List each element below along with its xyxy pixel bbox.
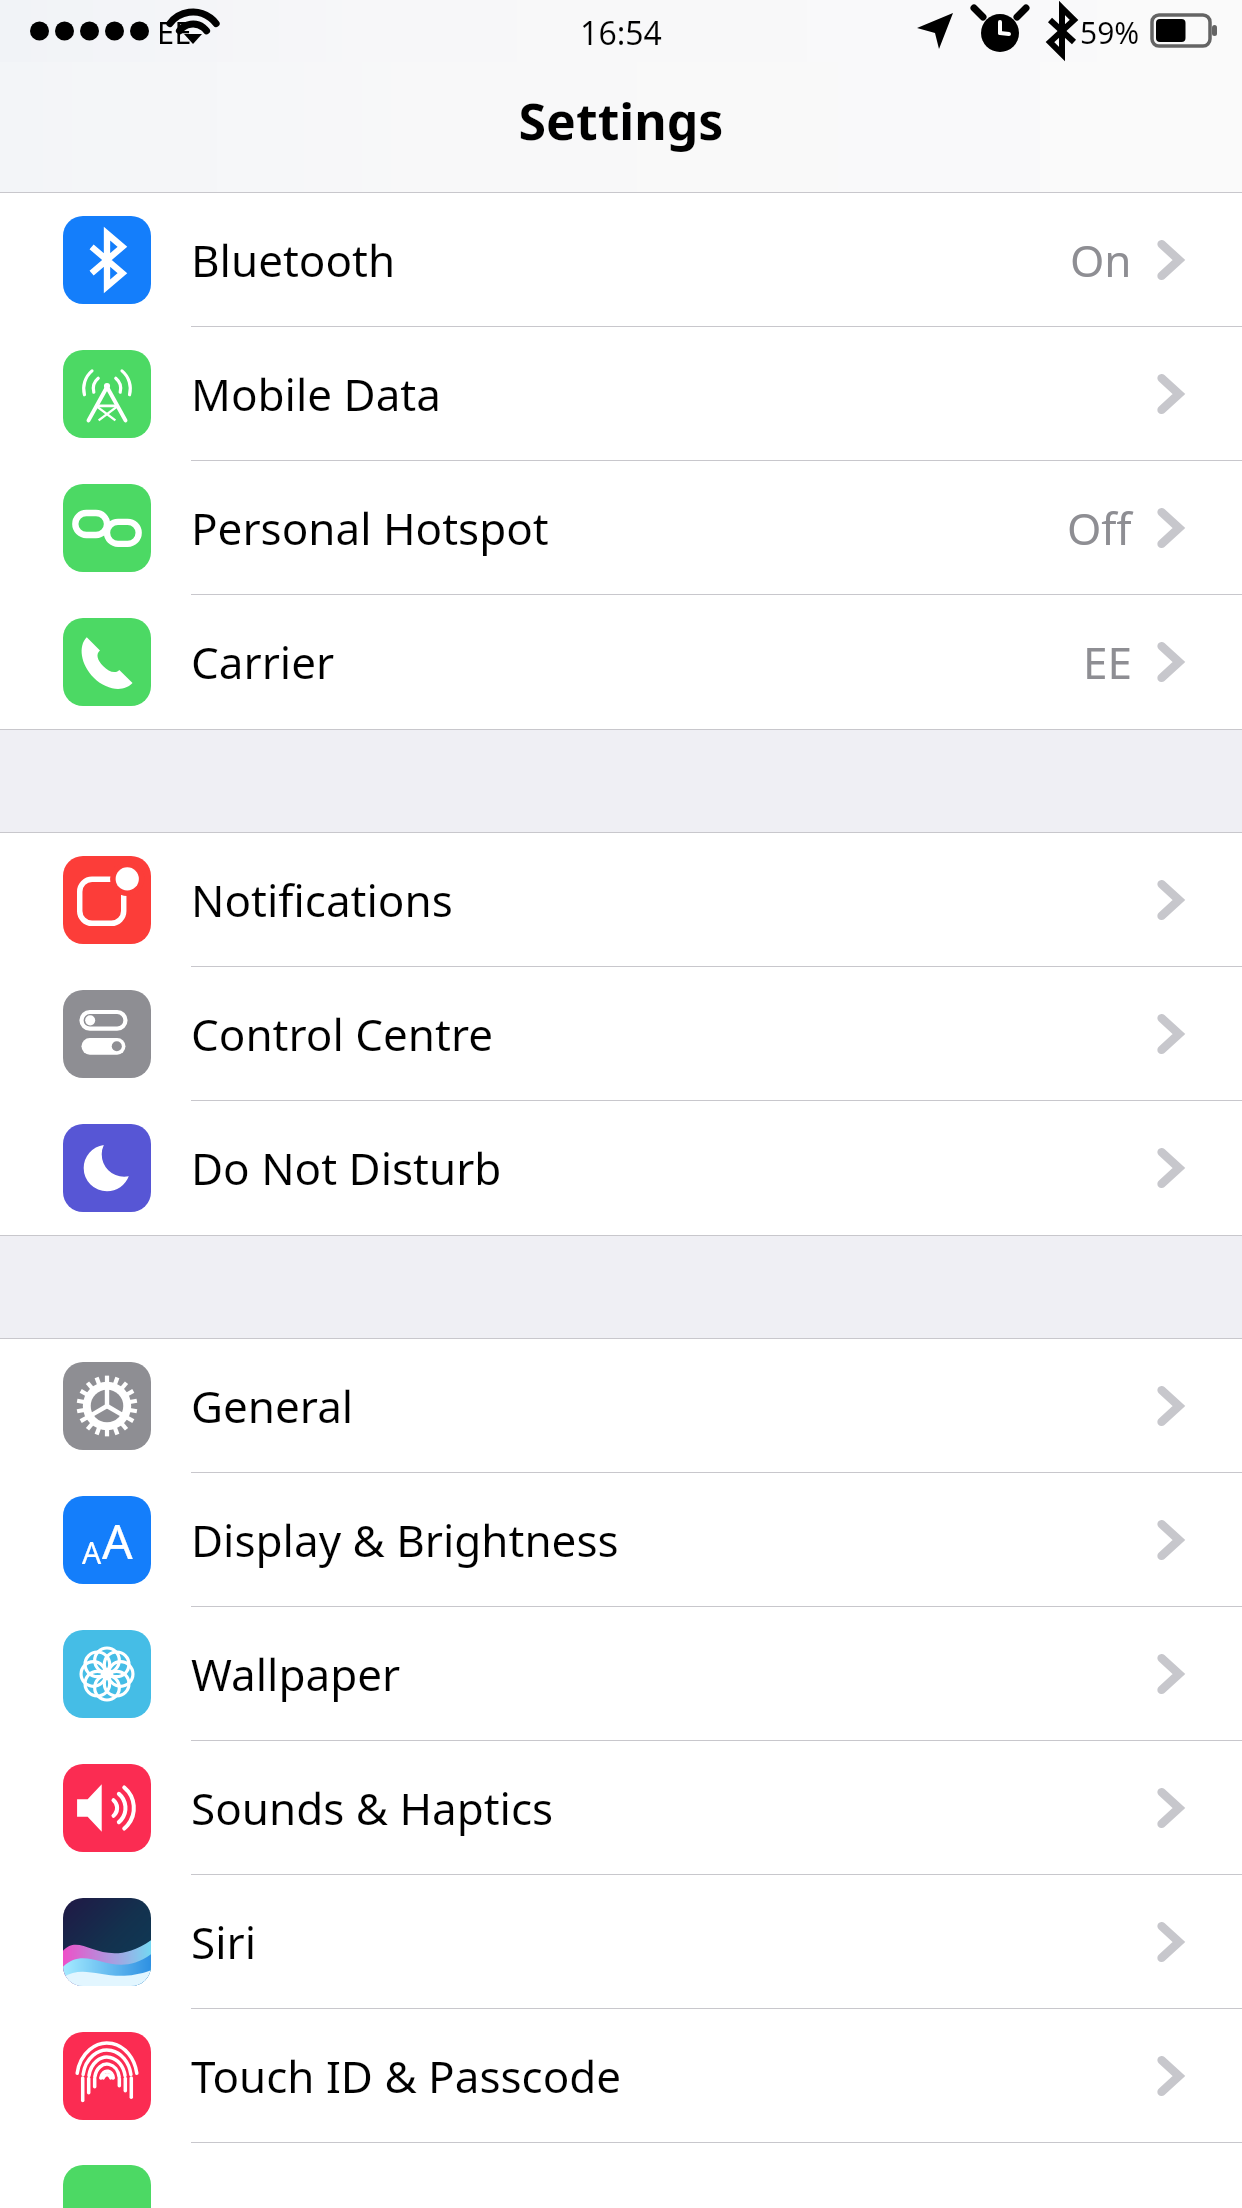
staticText: Bluetooth xyxy=(191,230,396,290)
button[interactable]: Mobile Data xyxy=(0,327,1242,461)
button[interactable]: Siri xyxy=(0,1875,1242,2009)
staticText: On xyxy=(1070,230,1132,290)
staticText: Do Not Disturb xyxy=(191,1138,502,1198)
button[interactable]: Do Not Disturb xyxy=(0,1101,1242,1235)
staticText: Personal Hotspot xyxy=(191,498,549,558)
staticText: Display & Brightness xyxy=(191,1510,619,1570)
staticText: Control Centre xyxy=(191,1004,494,1064)
button[interactable] xyxy=(0,2143,1242,2208)
staticText: Carrier xyxy=(191,632,335,692)
staticText: 59% xyxy=(1080,12,1140,53)
staticText: 16:54 xyxy=(0,11,1242,55)
button[interactable]: Notifications xyxy=(0,833,1242,967)
button[interactable]: Control Centre xyxy=(0,967,1242,1101)
button[interactable]: Personal Hotspot xyxy=(0,461,1242,595)
staticText: Mobile Data xyxy=(191,364,441,424)
button[interactable]: General xyxy=(0,1339,1242,1473)
staticText: General xyxy=(191,1376,354,1436)
staticText: A xyxy=(82,1532,102,1573)
staticText: Off xyxy=(1067,498,1132,558)
staticText: Touch ID & Passcode xyxy=(191,2046,622,2106)
staticText: A xyxy=(102,1508,133,1573)
staticText: Settings xyxy=(0,87,1242,155)
staticText: EE xyxy=(1083,632,1132,692)
button[interactable]: Sounds & Haptics xyxy=(0,1741,1242,1875)
button[interactable]: Carrier xyxy=(0,595,1242,729)
staticText: Siri xyxy=(191,1912,257,1972)
button[interactable]: Bluetooth xyxy=(0,193,1242,327)
button[interactable]: Wallpaper xyxy=(0,1607,1242,1741)
staticText: Wallpaper xyxy=(191,1644,401,1704)
staticText: Sounds & Haptics xyxy=(191,1778,554,1838)
button[interactable]: Touch ID & Passcode xyxy=(0,2009,1242,2143)
button[interactable]: A xyxy=(0,1473,1242,1607)
staticText: Notifications xyxy=(191,870,453,930)
staticText: EE xyxy=(157,11,192,53)
